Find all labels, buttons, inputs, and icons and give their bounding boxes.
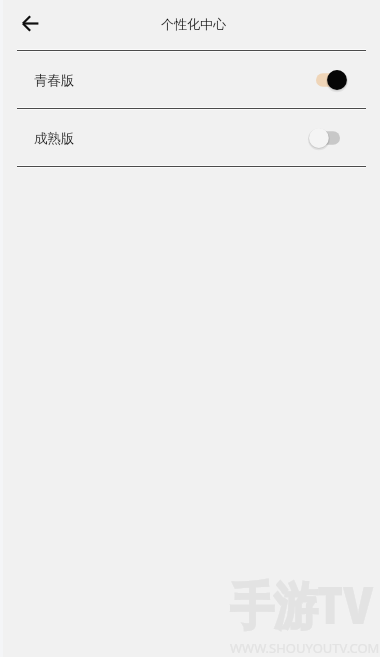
button[interactable]: Back	[8, 1, 52, 45]
staticText: WWW.SHOUYOUTV.COM	[230, 639, 380, 657]
button[interactable]: 青春版	[0, 52, 380, 109]
staticText: 个性化中心	[161, 16, 226, 32]
button[interactable]: Switch on	[314, 69, 350, 91]
staticText: 青春版	[34, 72, 75, 89]
button[interactable]: 成熟版	[0, 110, 380, 167]
staticText: 成熟版	[34, 130, 75, 147]
button[interactable]: Switch off	[314, 127, 350, 149]
staticText: 手游TV	[230, 570, 374, 639]
